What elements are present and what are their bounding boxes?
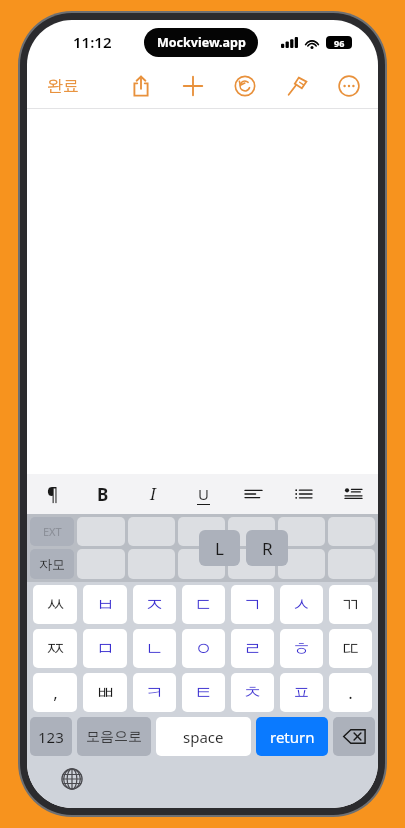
staticText: U	[198, 484, 209, 504]
button[interactable]: Backspace	[333, 717, 375, 756]
button[interactable]: return	[256, 717, 328, 756]
staticText: R	[262, 537, 273, 560]
button[interactable]: 자모	[30, 549, 74, 579]
button[interactable]: ㅅ	[280, 585, 323, 624]
staticText: ㅆ	[46, 593, 65, 617]
button[interactable]: Candidate	[228, 549, 275, 579]
staticText: ㅎ	[292, 637, 311, 661]
button[interactable]: ㅊ	[231, 673, 274, 712]
button[interactable]: ㅋ	[133, 673, 176, 712]
staticText: Mockview.app	[157, 34, 246, 51]
button[interactable]: ㅈ	[133, 585, 176, 624]
staticText: ㅇ	[194, 637, 213, 661]
staticText: 완료	[47, 76, 79, 96]
button[interactable]: Underline	[178, 474, 228, 514]
staticText: ㅍ	[292, 681, 311, 705]
button[interactable]: Candidate	[178, 549, 225, 579]
staticText: ㄹ	[243, 637, 262, 661]
button[interactable]: ㅉ	[33, 629, 77, 668]
button[interactable]: ㄱ	[231, 585, 274, 624]
staticText: space	[183, 727, 224, 747]
staticText: 123	[38, 727, 64, 747]
button[interactable]: Candidate	[228, 517, 275, 546]
button[interactable]: Candidate	[328, 549, 375, 579]
button[interactable]: Add	[178, 71, 208, 101]
staticText: ㅂ	[96, 593, 115, 617]
staticText: I	[150, 483, 156, 505]
staticText: 96	[334, 37, 345, 49]
button[interactable]: Candidate	[77, 517, 125, 546]
button[interactable]: Alignment	[228, 474, 278, 514]
button[interactable]: 완료	[41, 72, 85, 100]
staticText: ㄱ	[243, 593, 262, 617]
staticText: ㄷ	[194, 593, 213, 617]
button[interactable]: Change keyboard	[57, 764, 87, 794]
staticText: ㅌ	[194, 681, 213, 705]
button[interactable]: Bold	[78, 474, 128, 514]
button[interactable]: 123	[30, 717, 72, 756]
button[interactable]: ㅆ	[33, 585, 77, 624]
staticText: ㅉ	[46, 637, 65, 661]
button[interactable]: Undo	[230, 71, 260, 101]
button[interactable]: .	[329, 673, 372, 712]
button[interactable]: ㅍ	[280, 673, 323, 712]
button[interactable]: L	[199, 530, 240, 566]
staticText: L	[215, 537, 224, 560]
button[interactable]: List	[278, 474, 328, 514]
button[interactable]: ㄹ	[231, 629, 274, 668]
button[interactable]: space	[156, 717, 251, 756]
staticText: ,	[53, 681, 58, 704]
staticText: return	[270, 727, 315, 747]
staticText: 모음으로	[86, 728, 142, 746]
staticText: ㄸ	[341, 637, 360, 661]
staticText: B	[97, 483, 109, 506]
button[interactable]: Candidate	[328, 517, 375, 546]
button[interactable]: Candidate	[278, 517, 325, 546]
staticText: ¶	[47, 483, 59, 506]
staticText: ㅅ	[292, 593, 311, 617]
button[interactable]: ㅇ	[182, 629, 225, 668]
staticText: 11:12	[73, 32, 112, 52]
button[interactable]: ,	[33, 673, 77, 712]
staticText: ㅊ	[243, 681, 262, 705]
staticText: ㅁ	[96, 637, 115, 661]
staticText: ㅃ	[96, 681, 115, 705]
button[interactable]: Markup	[282, 71, 312, 101]
button[interactable]: Italic	[128, 474, 178, 514]
button[interactable]: Share	[126, 71, 156, 101]
button[interactable]: ㄷ	[182, 585, 225, 624]
button[interactable]: ㅎ	[280, 629, 323, 668]
button[interactable]: ㅁ	[83, 629, 127, 668]
button[interactable]: Candidate	[77, 549, 125, 579]
button[interactable]: Candidate	[128, 549, 175, 579]
button[interactable]: Insert	[328, 474, 378, 514]
staticText: ㄴ	[145, 637, 164, 661]
button[interactable]: Candidate	[278, 549, 325, 579]
staticText: EXT	[43, 524, 62, 539]
button[interactable]: 모음으로	[77, 717, 151, 756]
button[interactable]: Candidate	[178, 517, 225, 546]
button[interactable]: R	[246, 530, 288, 566]
button[interactable]: Paragraph style	[27, 474, 78, 514]
button[interactable]: ㄸ	[329, 629, 372, 668]
button[interactable]: Candidate	[128, 517, 175, 546]
staticText: 자모	[39, 556, 65, 572]
staticText: .	[348, 681, 353, 704]
button[interactable]: ㄲ	[329, 585, 372, 624]
button[interactable]: EXT	[30, 517, 74, 546]
staticText: ㅋ	[145, 681, 164, 705]
button[interactable]: ㅃ	[83, 673, 127, 712]
button[interactable]: ㄴ	[133, 629, 176, 668]
button[interactable]: ㅌ	[182, 673, 225, 712]
staticText: ㅈ	[145, 593, 164, 617]
button[interactable]: ㅂ	[83, 585, 127, 624]
staticText: ㄲ	[341, 593, 360, 617]
button[interactable]: More options	[334, 71, 364, 101]
